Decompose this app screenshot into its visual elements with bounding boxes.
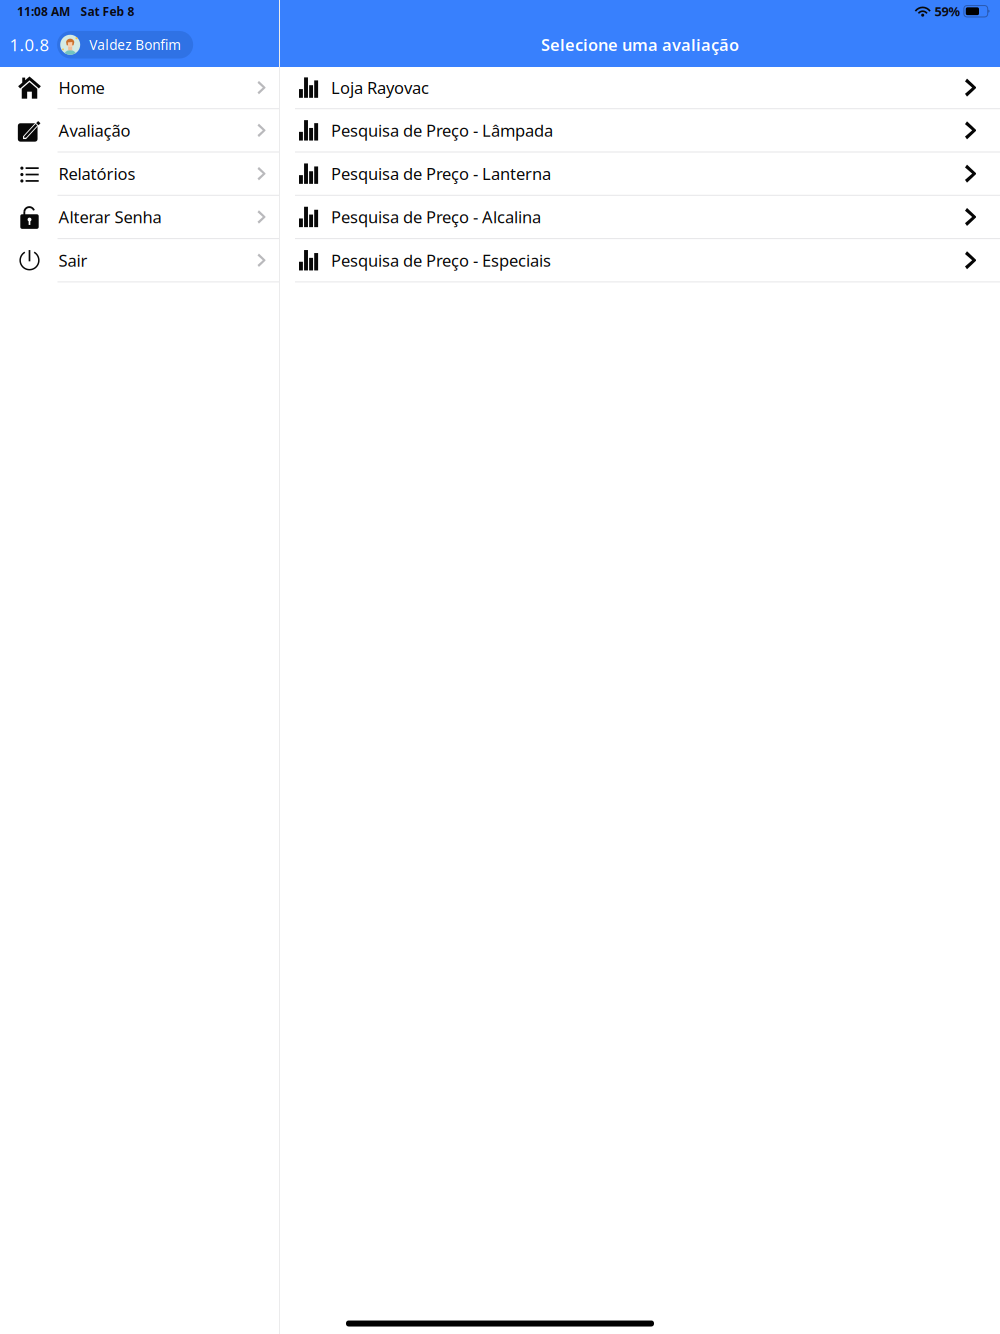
staticText: Alterar Senha: [58, 206, 161, 228]
staticText: Avaliação: [58, 119, 130, 142]
button[interactable]: Loja Rayovac: [280, 67, 1000, 109]
button[interactable]: Valdez Bonfim: [57, 31, 193, 58]
staticText: Sair: [58, 249, 87, 271]
staticText: Valdez Bonfim: [89, 35, 181, 54]
staticText: Loja Rayovac: [331, 76, 429, 99]
staticText: Pesquisa de Preço - Lanterna: [331, 162, 551, 185]
staticText: Pesquisa de Preço - Lâmpada: [331, 119, 553, 142]
staticText: Relatórios: [58, 162, 135, 185]
staticText: Pesquisa de Preço - Especiais: [331, 249, 551, 271]
button[interactable]: Pesquisa de Preço - Especiais: [280, 239, 1000, 282]
button[interactable]: Pesquisa de Preço - Lâmpada: [280, 109, 1000, 152]
staticText: Sat Feb 8: [80, 3, 134, 19]
button[interactable]: Relatórios: [0, 152, 279, 196]
button[interactable]: Sair: [0, 239, 279, 282]
button[interactable]: Pesquisa de Preço - Alcalina: [280, 196, 1000, 239]
button[interactable]: Avaliação: [0, 109, 279, 152]
staticText: Home: [58, 76, 104, 99]
button[interactable]: Pesquisa de Preço - Lanterna: [280, 152, 1000, 196]
button[interactable]: Home: [0, 67, 279, 109]
staticText: 1.0.8: [9, 33, 49, 56]
staticText: 59%: [934, 2, 960, 20]
staticText: Selecione uma avaliação: [541, 34, 739, 56]
staticText: 11:08 AM: [17, 3, 70, 19]
button[interactable]: Alterar Senha: [0, 196, 279, 239]
staticText: Pesquisa de Preço - Alcalina: [331, 206, 541, 228]
